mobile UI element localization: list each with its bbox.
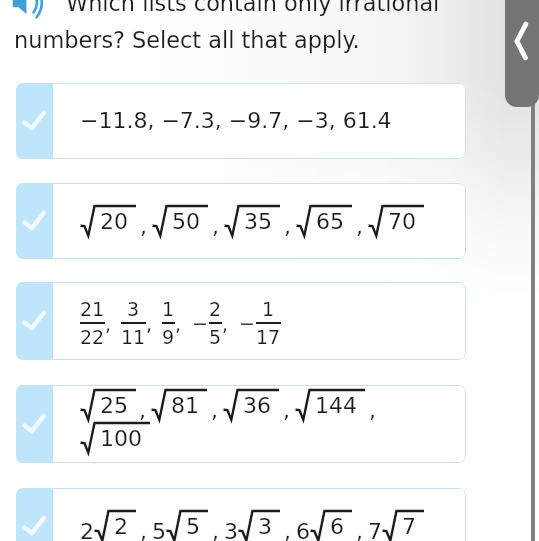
staticText: 5 bbox=[209, 326, 222, 348]
staticText: 3 bbox=[258, 514, 272, 540]
staticText: 7 bbox=[368, 519, 382, 541]
staticText: 2 bbox=[114, 514, 128, 540]
staticText: 70 bbox=[388, 209, 416, 235]
staticText: 144 bbox=[315, 393, 357, 419]
button[interactable]: 21 bbox=[16, 282, 466, 360]
staticText: , bbox=[284, 519, 291, 541]
staticText: 2 bbox=[80, 519, 94, 541]
staticText: , bbox=[175, 313, 182, 335]
staticText: , bbox=[284, 214, 291, 240]
staticText: , bbox=[140, 519, 147, 541]
staticText: , bbox=[356, 519, 363, 541]
staticText: 11 bbox=[121, 326, 146, 348]
staticText: , bbox=[139, 398, 146, 424]
staticText: 5 bbox=[186, 514, 200, 540]
button[interactable]: 20 bbox=[16, 183, 466, 259]
staticText: 6 bbox=[296, 519, 310, 541]
staticText: 36 bbox=[243, 393, 271, 419]
staticText: , bbox=[211, 398, 218, 424]
staticText: 6 bbox=[330, 514, 344, 540]
staticText: numbers? Select all that apply. bbox=[14, 27, 360, 53]
staticText: 5 bbox=[152, 519, 166, 541]
button[interactable]: 25 bbox=[16, 385, 466, 463]
staticText: , bbox=[356, 214, 363, 240]
staticText: 7 bbox=[402, 514, 416, 540]
staticText: 20 bbox=[100, 209, 128, 235]
staticText: 21 bbox=[80, 298, 105, 320]
staticText: 17 bbox=[256, 326, 281, 348]
staticText: − bbox=[192, 312, 208, 334]
staticText: , bbox=[222, 313, 229, 335]
staticText: 3 bbox=[224, 519, 238, 541]
staticText: 25 bbox=[100, 393, 128, 419]
staticText: , bbox=[212, 214, 219, 240]
staticText: , bbox=[140, 214, 147, 240]
staticText: 65 bbox=[316, 209, 344, 235]
staticText: 50 bbox=[172, 209, 200, 235]
staticText: , bbox=[146, 313, 153, 335]
staticText: 1 bbox=[162, 298, 175, 320]
staticText: 9 bbox=[162, 326, 175, 348]
button[interactable]: Collapse panel bbox=[505, 0, 539, 107]
button[interactable]: −11.8, −7.3, −9.7, −3, 61.4 bbox=[16, 83, 466, 159]
staticText: 35 bbox=[244, 209, 272, 235]
staticText: 3 bbox=[127, 298, 140, 320]
staticText: 100 bbox=[100, 426, 142, 452]
staticText: 22 bbox=[80, 326, 105, 348]
staticText: , bbox=[283, 398, 290, 424]
staticText: , bbox=[105, 313, 112, 335]
staticText: , bbox=[369, 398, 376, 424]
staticText: − bbox=[239, 312, 255, 334]
staticText: −11.8, −7.3, −9.7, −3, 61.4 bbox=[80, 108, 392, 134]
staticText: 1 bbox=[262, 298, 275, 320]
staticText: , bbox=[212, 519, 219, 541]
button[interactable]: 2 bbox=[16, 488, 466, 541]
staticText: 2 bbox=[209, 298, 222, 320]
staticText: 81 bbox=[171, 393, 199, 419]
staticText: Which lists contain only irrational bbox=[66, 0, 440, 16]
